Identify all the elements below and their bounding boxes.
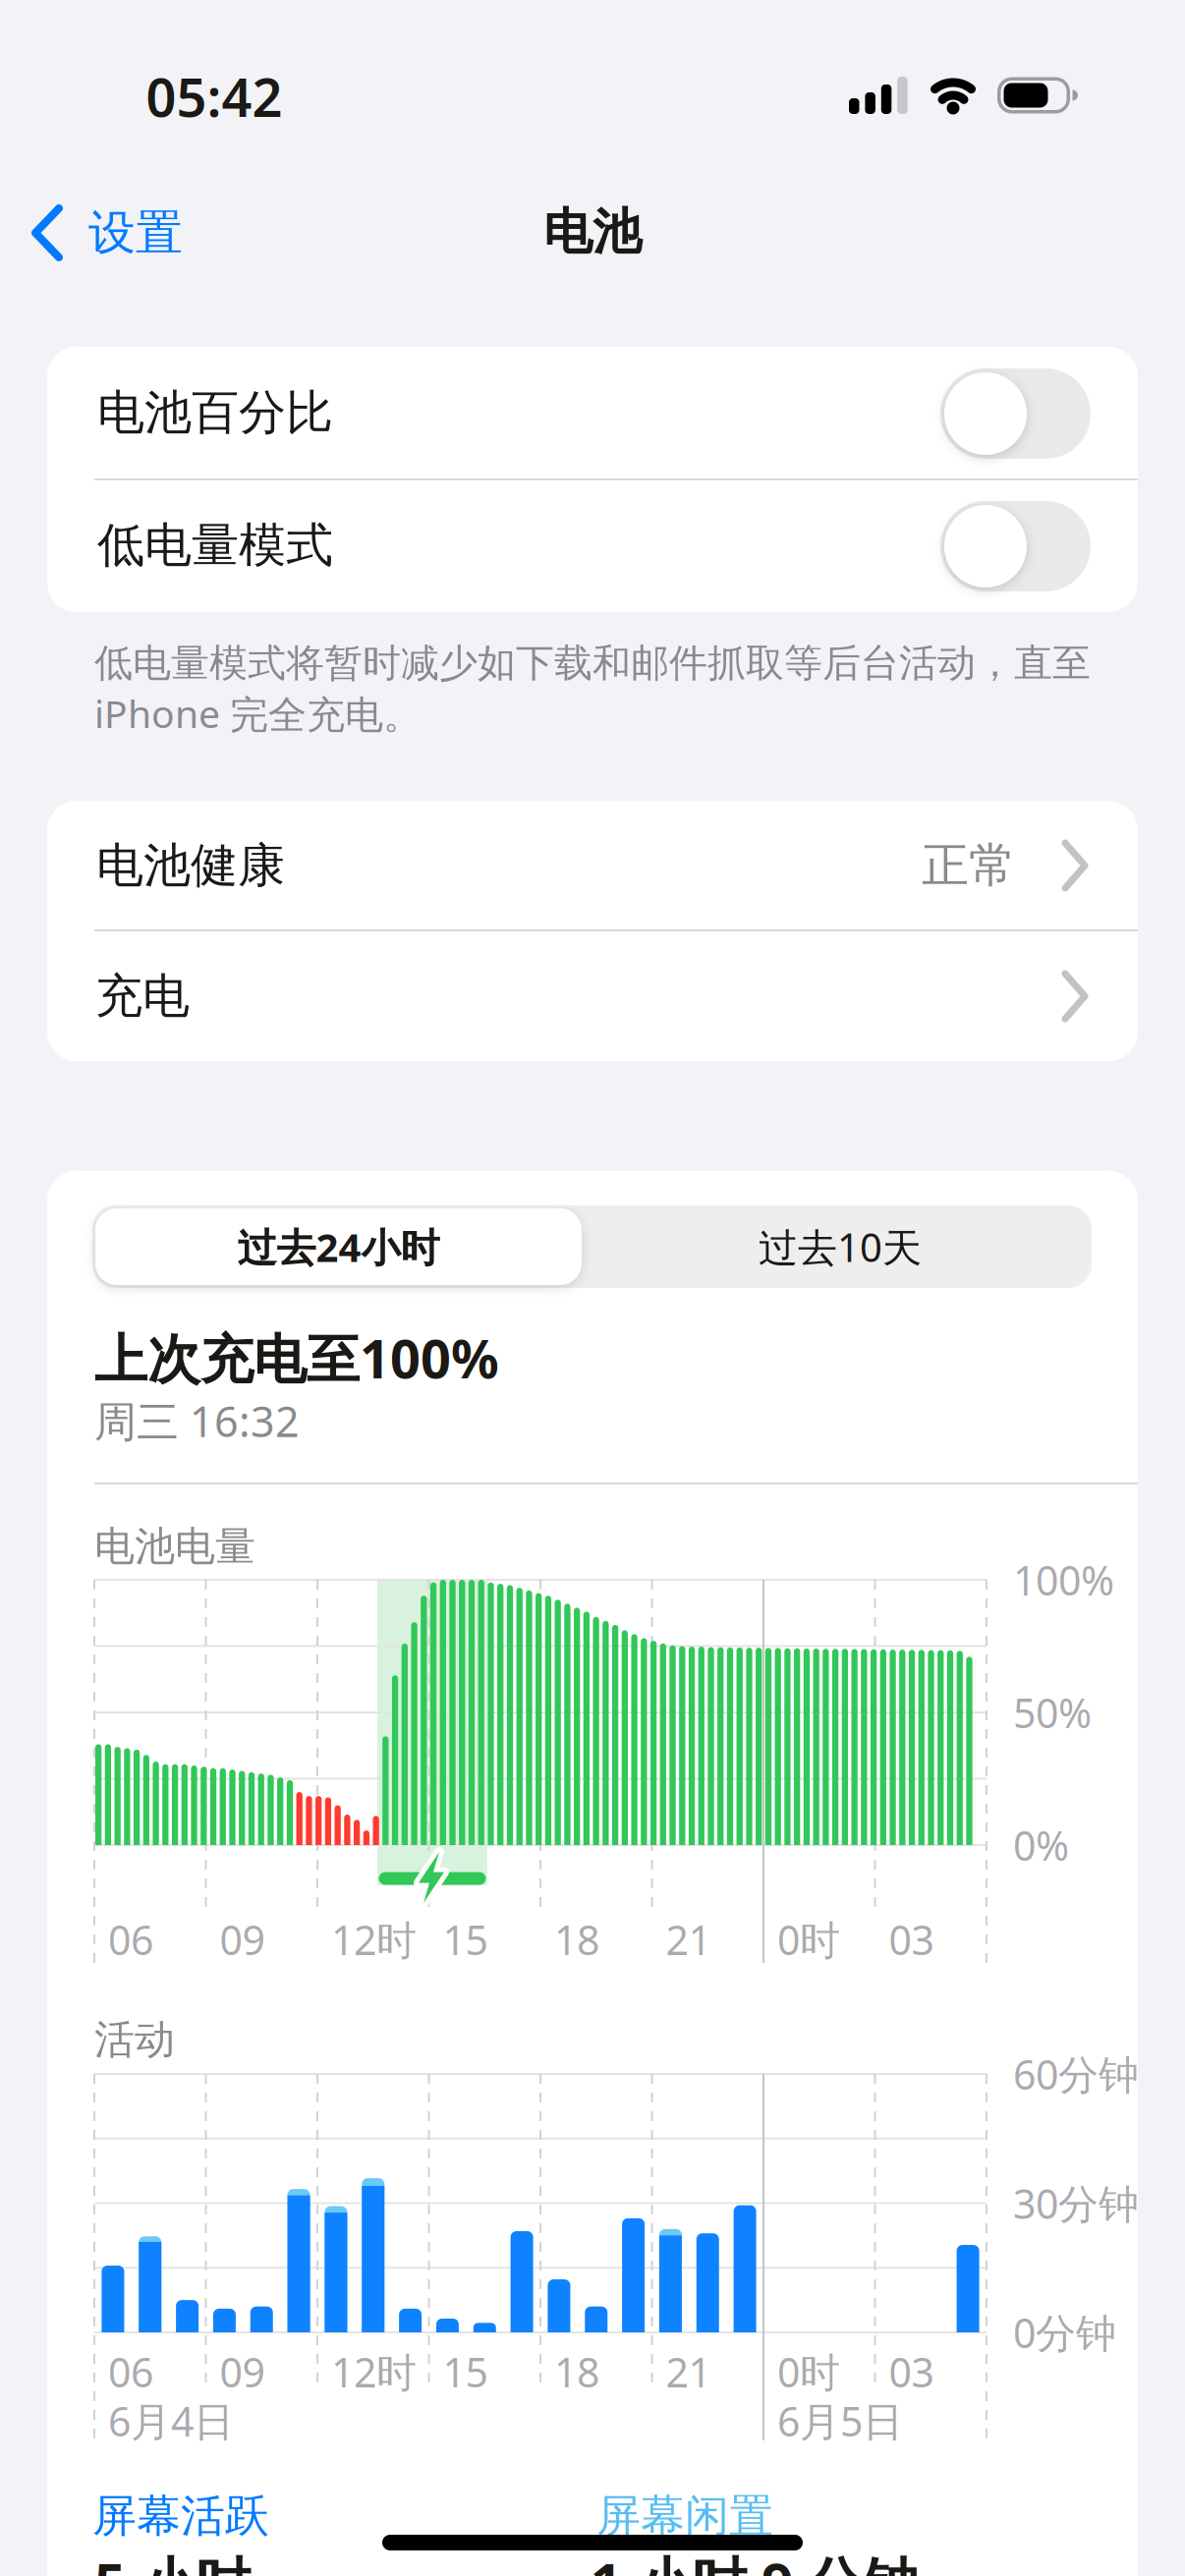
staticText: 06 (108, 1912, 153, 1967)
staticText: 电池健康 (96, 836, 285, 895)
staticText: 低电量模式将暂时减少如下载和邮件抓取等后台活动，直至 (94, 639, 1091, 687)
button[interactable]: 过去10天 (594, 1205, 1086, 1288)
staticText: 正常 (922, 836, 1016, 895)
staticText: iPhone 完全充电。 (94, 687, 422, 739)
staticText: 屏幕闲置 (596, 2488, 773, 2544)
staticText: 03 (889, 2344, 934, 2399)
staticText: 充电 (95, 967, 190, 1026)
staticText: 18 (554, 1912, 599, 1967)
staticText: 60分钟 (1013, 2047, 1139, 2101)
staticText: 过去24小时 (237, 1220, 440, 1274)
staticText: 50% (1013, 1685, 1092, 1740)
staticText: 屏幕活跃 (92, 2488, 269, 2544)
button[interactable]: 充电 (47, 931, 1138, 1061)
staticText: 30分钟 (1013, 2176, 1139, 2231)
staticText: 1 小时 9 分钟 (591, 2544, 918, 2576)
button[interactable]: 过去24小时 (95, 1208, 582, 1285)
staticText: 0% (1013, 1818, 1069, 1872)
button[interactable]: 低电量模式 (940, 501, 1091, 591)
staticText: 12时 (331, 1912, 417, 1967)
staticText: 设置 (88, 203, 183, 263)
staticText: 6月5日 (777, 2393, 903, 2448)
button[interactable]: 电池健康 (47, 801, 1138, 930)
staticText: 09 (220, 1912, 265, 1967)
staticText: 过去10天 (759, 1220, 922, 1274)
staticText: 100% (1013, 1552, 1114, 1607)
staticText: 0时 (777, 2344, 840, 2399)
staticText: 活动 (94, 2014, 175, 2065)
staticText: 6月4日 (108, 2393, 234, 2448)
staticText: 18 (554, 2344, 599, 2399)
staticText: 5 小时 (94, 2544, 251, 2576)
staticText: 0时 (777, 1912, 840, 1967)
staticText: 电池 (543, 201, 642, 263)
staticText: 09 (220, 2344, 265, 2399)
staticText: 15 (443, 1912, 488, 1967)
staticText: 21 (666, 2344, 711, 2399)
staticText: 0分钟 (1013, 2305, 1116, 2360)
staticText: 06 (108, 2344, 153, 2399)
staticText: 03 (889, 1912, 934, 1967)
button[interactable]: 电池百分比 (940, 368, 1091, 459)
staticText: 15 (443, 2344, 488, 2399)
staticText: 电池百分比 (97, 383, 333, 442)
staticText: 上次充电至100% (94, 1322, 499, 1394)
staticText: 电池电量 (94, 1521, 255, 1572)
staticText: 05:42 (146, 60, 282, 132)
staticText: 低电量模式 (97, 516, 333, 575)
button[interactable]: 返回设置 (0, 194, 197, 272)
staticText: 12时 (331, 2344, 417, 2399)
staticText: 周三 16:32 (94, 1392, 300, 1449)
staticText: 21 (666, 1912, 711, 1967)
